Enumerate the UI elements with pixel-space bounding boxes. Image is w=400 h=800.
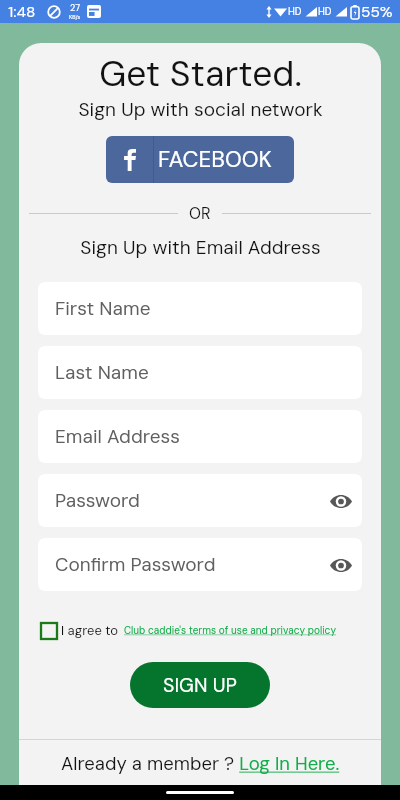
staticText: First Name (55, 296, 354, 321)
button[interactable]: Password (38, 474, 362, 527)
staticText: FACEBOOK (158, 145, 272, 174)
staticText: 27 (70, 2, 80, 14)
button[interactable]: I agree checkbox (40, 622, 57, 639)
staticText: 1:48 (8, 2, 36, 22)
staticText: OR (189, 203, 211, 224)
button[interactable]: Already a member ? Log In Here. (61, 752, 340, 776)
button[interactable]: First Name (38, 282, 362, 335)
staticText: Email Address (55, 424, 354, 449)
staticText: Sign Up with Email Address (80, 235, 321, 260)
button[interactable]: FACEBOOK (106, 136, 294, 183)
staticText: Password (55, 488, 328, 513)
staticText: Confirm Password (55, 552, 328, 577)
button[interactable]: Email Address (38, 410, 362, 463)
button[interactable]: Club caddie's terms of use and privacy p… (124, 624, 336, 637)
staticText: Last Name (55, 360, 354, 385)
staticText: I agree to (61, 622, 119, 639)
button[interactable]: Show password (328, 552, 354, 578)
button[interactable]: Last Name (38, 346, 362, 399)
button[interactable]: SIGN UP (130, 662, 270, 708)
button[interactable]: Show password (328, 488, 354, 514)
staticText: Sign Up with social network (78, 97, 323, 122)
staticText: HD (318, 5, 332, 18)
staticText: KB/s (69, 14, 81, 21)
button[interactable]: Confirm Password (38, 538, 362, 591)
staticText: Get Started. (99, 51, 302, 97)
staticText: HD (288, 5, 302, 18)
staticText: 55% (361, 2, 393, 22)
staticText: SIGN UP (163, 673, 237, 698)
